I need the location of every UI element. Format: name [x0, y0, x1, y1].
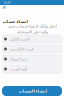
staticText: البريد الإلكتروني [9, 47, 33, 51]
staticText: أدخل بياناتك لإنشاء حساب جديد [7, 24, 56, 28]
button[interactable]: Close [1, 5, 7, 10]
staticText: إنشاء الحساب [18, 89, 46, 93]
staticText: الاسم الكامل [9, 37, 29, 41]
button[interactable]: رقم الجوال [2, 55, 62, 63]
staticText: انشاء حساب [2, 19, 27, 24]
button[interactable]: الاسم الكامل [2, 35, 62, 43]
staticText: والبدء في الاستخدام [16, 29, 47, 34]
button[interactable]: البريد الإلكتروني [2, 45, 62, 53]
staticText: ✕ [2, 4, 6, 11]
button[interactable]: إنشاء الحساب [2, 86, 62, 96]
staticText: كلمة المرور [9, 67, 27, 71]
staticText: 9:41 [4, 0, 11, 5]
staticText: رقم الجوال [9, 57, 28, 61]
button[interactable]: كلمة المرور [2, 65, 62, 73]
